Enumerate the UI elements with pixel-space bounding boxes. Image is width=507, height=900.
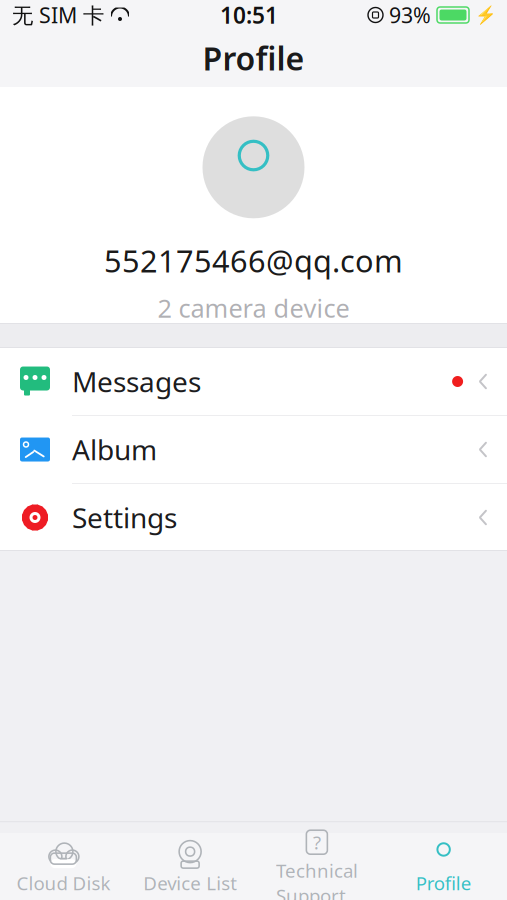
staticText: 552175466@qq.com xyxy=(104,240,403,281)
staticText: Messages xyxy=(72,363,201,400)
button[interactable]: Album xyxy=(0,416,507,484)
staticText: 2 camera device xyxy=(157,291,349,325)
staticText: Settings xyxy=(72,499,177,536)
staticText: Profile xyxy=(202,37,304,79)
staticText: ? xyxy=(313,830,321,855)
button[interactable]: Device List xyxy=(127,835,254,899)
staticText: 10:51 xyxy=(220,0,278,30)
staticText: Cloud Disk xyxy=(16,871,110,895)
staticText: Profile xyxy=(416,871,472,895)
button[interactable]: Messages xyxy=(0,348,507,416)
button[interactable]: ? xyxy=(253,822,380,900)
button[interactable]: Cloud Disk xyxy=(0,835,127,899)
staticText: Album xyxy=(72,431,157,468)
staticText: 无 SIM 卡 xyxy=(12,1,104,29)
button[interactable]: Settings xyxy=(0,484,507,551)
staticText: Device List xyxy=(143,871,237,895)
button[interactable]: Profile xyxy=(380,835,507,899)
staticText: ⚡ xyxy=(475,5,497,25)
staticText: Technical Support xyxy=(276,858,358,900)
staticText: 93% xyxy=(389,1,431,29)
